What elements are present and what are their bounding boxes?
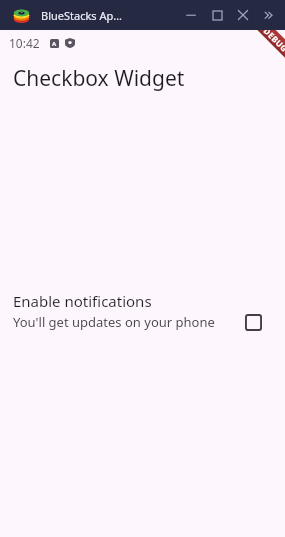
button[interactable]: Enable notifications — [0, 289, 285, 336]
staticText: You'll get updates on your phone — [13, 313, 215, 331]
button[interactable]: Enable notifications checkbox — [241, 310, 265, 334]
staticText: Checkbox Widget — [13, 64, 185, 93]
button[interactable]: Maximize — [204, 0, 230, 30]
staticText: 10:42 — [9, 35, 40, 51]
staticText: BlueStacks Ap… — [41, 8, 122, 23]
button[interactable]: Close — [230, 0, 256, 30]
staticText: A — [52, 40, 57, 48]
staticText: DEBUG — [261, 30, 285, 54]
button[interactable]: Minimize — [178, 0, 204, 30]
staticText: Enable notifications — [13, 291, 152, 311]
button[interactable]: More — [256, 0, 282, 30]
